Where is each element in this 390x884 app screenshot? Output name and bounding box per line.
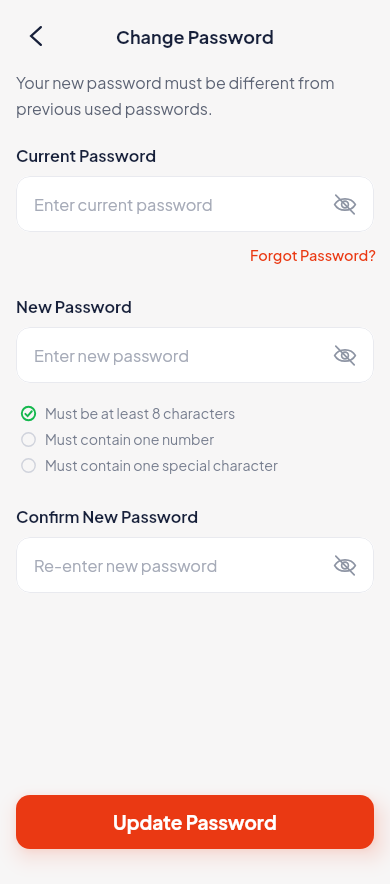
button[interactable]: Show password bbox=[327, 337, 363, 373]
button[interactable]: Enter new password bbox=[16, 327, 374, 383]
staticText: Current Password bbox=[16, 145, 157, 165]
staticText: Must contain one special character bbox=[45, 456, 278, 474]
staticText: Enter current password bbox=[34, 194, 213, 215]
staticText: Must contain one number bbox=[45, 430, 215, 448]
button[interactable]: Forgot Password? bbox=[246, 244, 381, 266]
button[interactable]: Show password bbox=[327, 547, 363, 583]
staticText: Re-enter new password bbox=[34, 555, 218, 576]
button[interactable]: Re-enter new password bbox=[16, 537, 374, 593]
staticText: Change Password bbox=[116, 25, 274, 48]
staticText: Your new password must be different from… bbox=[16, 72, 335, 119]
staticText: Must be at least 8 characters bbox=[45, 404, 236, 422]
staticText: Update Password bbox=[113, 810, 277, 834]
staticText: Enter new password bbox=[34, 345, 190, 366]
button[interactable]: Update Password bbox=[16, 795, 374, 849]
staticText: New Password bbox=[16, 296, 132, 316]
staticText: Forgot Password? bbox=[250, 246, 377, 264]
button[interactable]: Back bbox=[16, 16, 56, 56]
staticText: Confirm New Password bbox=[16, 506, 199, 526]
button[interactable]: Show password bbox=[327, 186, 363, 222]
button[interactable]: Enter current password bbox=[16, 176, 374, 232]
